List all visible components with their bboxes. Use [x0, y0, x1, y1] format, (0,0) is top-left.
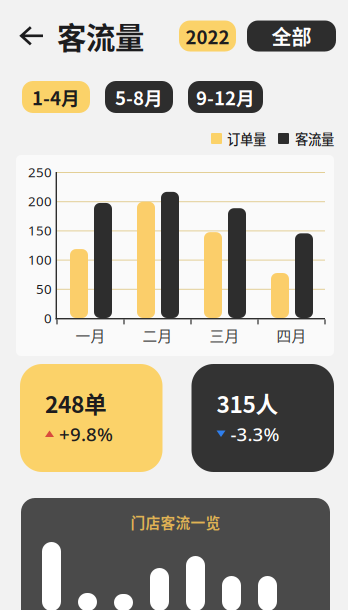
staticText: 2022 — [185, 22, 229, 49]
button[interactable]: 全部 — [247, 20, 336, 51]
button[interactable]: 9-12月 — [188, 81, 263, 113]
button[interactable]: 315人 — [191, 364, 334, 472]
staticText: 客流量 — [57, 15, 144, 57]
staticText: 315人 — [216, 387, 278, 419]
staticText: 50 — [36, 280, 52, 298]
button[interactable]: 2022 — [179, 20, 236, 51]
button[interactable]: 5-8月 — [105, 81, 173, 113]
button[interactable]: 248单 — [20, 364, 162, 472]
staticText: 5-8月 — [115, 83, 163, 110]
staticText: 200 — [28, 192, 52, 210]
staticText: 门店客流一览 — [130, 511, 220, 533]
staticText: 四月 — [276, 324, 306, 346]
staticText: 0 — [44, 309, 52, 327]
staticText: 150 — [28, 221, 52, 239]
staticText: 一月 — [75, 324, 105, 346]
button[interactable]: Back — [0, 17, 57, 55]
staticText: 二月 — [142, 324, 172, 346]
staticText: 客流量 — [295, 129, 334, 148]
staticText: 9-12月 — [196, 83, 255, 110]
staticText: 250 — [28, 163, 52, 181]
staticText: 订单量 — [227, 129, 266, 148]
staticText: 全部 — [271, 21, 311, 50]
staticText: 100 — [28, 251, 52, 268]
staticText: +9.8% — [59, 422, 113, 446]
staticText: 三月 — [209, 324, 239, 346]
staticText: 1-4月 — [32, 83, 80, 110]
staticText: -3.3% — [230, 422, 279, 446]
button[interactable]: 1-4月 — [22, 81, 90, 113]
staticText: 248单 — [45, 387, 107, 419]
